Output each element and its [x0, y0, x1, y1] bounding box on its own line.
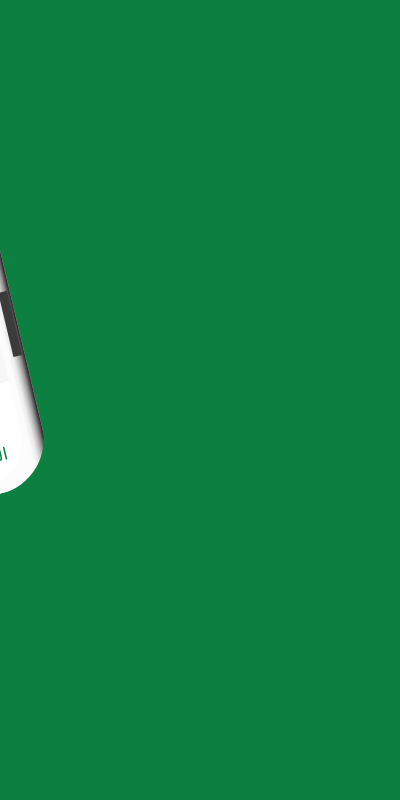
button[interactable]: الرئيسية [0, 381, 32, 500]
staticText: الرئيسية [0, 443, 10, 476]
